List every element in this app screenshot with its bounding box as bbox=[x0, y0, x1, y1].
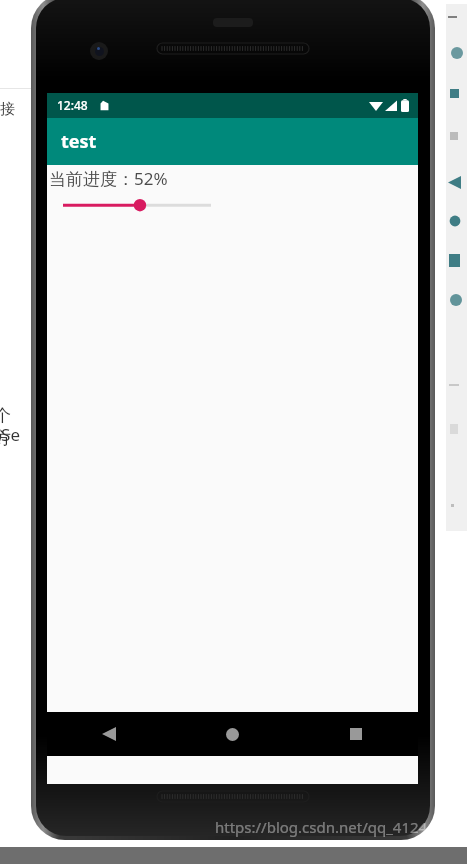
button[interactable]: Back bbox=[47, 712, 170, 756]
button[interactable]: Recent apps bbox=[294, 712, 418, 756]
staticText: 12:48 bbox=[57, 97, 88, 113]
staticText: 接 bbox=[0, 100, 15, 119]
staticText: test bbox=[61, 129, 97, 154]
staticText: 个方 bbox=[0, 405, 25, 449]
staticText: https://blog.csdn.net/qq_41241926 bbox=[215, 817, 462, 837]
button[interactable]: test bbox=[47, 118, 418, 165]
staticText: (Se bbox=[0, 423, 21, 446]
button[interactable]: Progress slider bbox=[47, 196, 418, 218]
staticText: 当前进度：52% bbox=[49, 167, 168, 190]
button[interactable]: Home bbox=[170, 712, 294, 756]
